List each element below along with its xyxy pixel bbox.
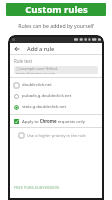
staticText: Custom rules [25, 3, 88, 16]
button[interactable]: stats.g.doubleclick.net [9, 102, 103, 112]
staticText: stats.g.doubleclick.net [22, 104, 66, 110]
staticText: Rules can be added by yourself [18, 22, 94, 29]
button[interactable]: Apply to Chrome requests only [9, 117, 103, 125]
staticText: Apply to Chrome requests only [22, 118, 85, 124]
staticText: FREE PURE-SUBVERSION [14, 185, 60, 190]
staticText: Use a higher priority in the rule [27, 133, 86, 138]
button[interactable]: doubleclick.net [9, 80, 103, 90]
staticText: doubleclick.net [22, 82, 52, 88]
button[interactable]: Back [13, 45, 21, 53]
button[interactable]: pubads.g.doubleclick.net [9, 91, 103, 101]
staticText: Add a rule [27, 45, 55, 53]
staticText: ||example.com^$third-party,domain=~a.com [16, 66, 96, 74]
button[interactable]: ||example.com^$third-party,domain=~a.com [14, 66, 98, 74]
staticText: Rule text [14, 58, 33, 64]
button[interactable]: Use a higher priority in the rule [9, 132, 103, 139]
staticText: pubads.g.doubleclick.net [22, 93, 72, 99]
button[interactable]: Custom rules [6, 3, 106, 16]
